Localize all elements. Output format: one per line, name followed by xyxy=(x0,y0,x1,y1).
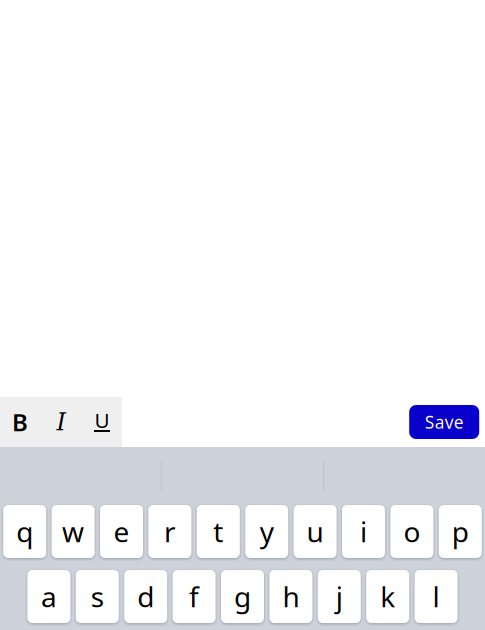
staticText: t xyxy=(213,513,223,550)
button[interactable]: l xyxy=(415,570,458,623)
staticText: B xyxy=(12,406,28,438)
staticText: i xyxy=(360,513,367,550)
staticText: q xyxy=(16,513,33,550)
button[interactable]: j xyxy=(318,570,361,623)
staticText: l xyxy=(433,578,440,615)
staticText: e xyxy=(113,513,129,550)
button[interactable]: a xyxy=(27,570,70,623)
staticText: g xyxy=(234,578,251,615)
button[interactable]: Underline xyxy=(81,397,122,447)
button[interactable]: Save xyxy=(409,405,479,439)
button[interactable]: u xyxy=(294,505,337,558)
staticText: w xyxy=(62,513,84,550)
button[interactable]: r xyxy=(148,505,191,558)
button[interactable]: i xyxy=(342,505,385,558)
button[interactable]: o xyxy=(390,505,433,558)
staticText: u xyxy=(307,513,324,550)
button[interactable]: h xyxy=(269,570,312,623)
staticText: I xyxy=(56,408,65,436)
button[interactable]: f xyxy=(173,570,216,623)
button[interactable]: k xyxy=(366,570,409,623)
staticText: f xyxy=(189,578,199,615)
staticText: d xyxy=(137,578,154,615)
staticText: j xyxy=(336,578,343,615)
button[interactable]: e xyxy=(100,505,143,558)
staticText: k xyxy=(380,578,395,615)
button[interactable]: t xyxy=(197,505,240,558)
button[interactable]: p xyxy=(439,505,482,558)
staticText: a xyxy=(41,578,57,615)
staticText: y xyxy=(260,513,274,550)
button[interactable]: w xyxy=(52,505,95,558)
button[interactable]: d xyxy=(124,570,167,623)
staticText: p xyxy=(452,513,469,550)
button[interactable]: q xyxy=(3,505,46,558)
staticText: U xyxy=(94,406,109,434)
button[interactable]: s xyxy=(76,570,119,623)
staticText: s xyxy=(91,578,104,615)
staticText: o xyxy=(403,513,420,550)
button[interactable]: g xyxy=(221,570,264,623)
button[interactable]: Italic xyxy=(40,397,81,447)
staticText: Save xyxy=(425,410,464,433)
staticText: h xyxy=(282,578,299,615)
button[interactable]: y xyxy=(245,505,288,558)
button[interactable]: Bold xyxy=(0,397,40,447)
staticText: r xyxy=(164,513,176,550)
